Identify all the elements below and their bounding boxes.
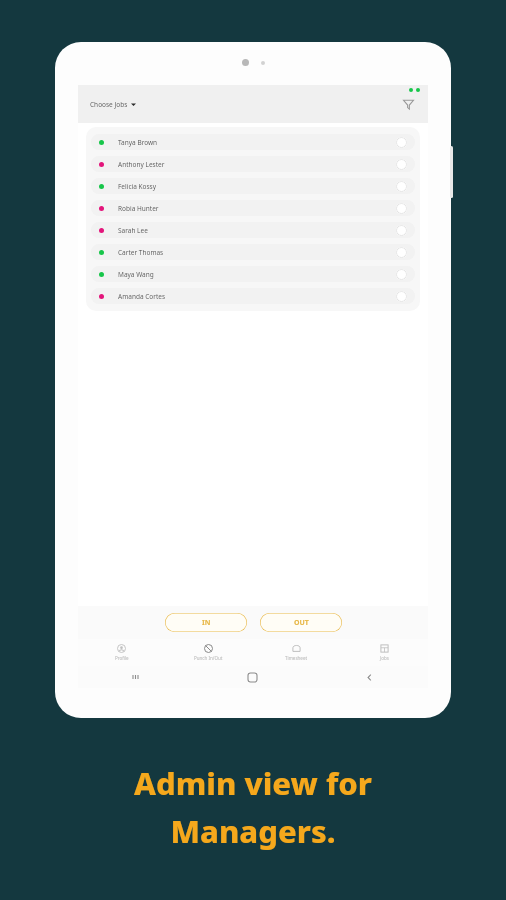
staticText: IN: [202, 618, 211, 628]
button[interactable]: Maya Wang: [91, 266, 415, 282]
button[interactable]: Jobs: [340, 639, 428, 666]
other: Select Robia Hunter: [396, 203, 407, 214]
staticText: Choose Jobs: [90, 100, 128, 109]
other: Select Felicia Kossy: [396, 181, 407, 192]
button[interactable]: Punch In/Out: [165, 639, 252, 666]
button[interactable]: OUT: [260, 613, 342, 632]
button[interactable]: Back: [311, 666, 428, 688]
staticText: Amanda Cortes: [118, 292, 166, 301]
button[interactable]: Filter: [398, 94, 418, 114]
button[interactable]: IN: [165, 613, 247, 632]
staticText: Robia Hunter: [118, 204, 159, 213]
other: Select Anthony Lester: [396, 159, 407, 170]
staticText: Punch In/Out: [194, 655, 223, 661]
button[interactable]: Robia Hunter: [91, 200, 415, 216]
staticText: Sarah Lee: [118, 226, 148, 235]
button[interactable]: Sarah Lee: [91, 222, 415, 238]
staticText: Admin view for: [134, 762, 372, 804]
button[interactable]: Carter Thomas: [91, 244, 415, 260]
button[interactable]: Home: [194, 666, 311, 688]
button[interactable]: Choose Jobs: [88, 96, 138, 113]
staticText: Jobs: [380, 655, 389, 661]
staticText: Profile: [115, 655, 129, 661]
staticText: Maya Wang: [118, 270, 154, 279]
button[interactable]: Felicia Kossy: [91, 178, 415, 194]
staticText: Felicia Kossy: [118, 182, 157, 191]
staticText: Managers.: [170, 810, 336, 852]
other: Select Amanda Cortes: [396, 291, 407, 302]
button[interactable]: Recents: [78, 666, 194, 688]
staticText: Anthony Lester: [118, 160, 165, 169]
button[interactable]: Profile: [78, 639, 165, 666]
other: Select Carter Thomas: [396, 247, 407, 258]
staticText: OUT: [294, 618, 309, 628]
button[interactable]: Amanda Cortes: [91, 288, 415, 304]
staticText: Timesheet: [285, 655, 308, 661]
other: Select Maya Wang: [396, 269, 407, 280]
staticText: Tanya Brown: [118, 138, 158, 147]
staticText: Carter Thomas: [118, 248, 164, 257]
other: Select Sarah Lee: [396, 225, 407, 236]
button[interactable]: Anthony Lester: [91, 156, 415, 172]
button[interactable]: Tanya Brown: [91, 134, 415, 150]
button[interactable]: Timesheet: [252, 639, 340, 666]
other: Select Tanya Brown: [396, 137, 407, 148]
